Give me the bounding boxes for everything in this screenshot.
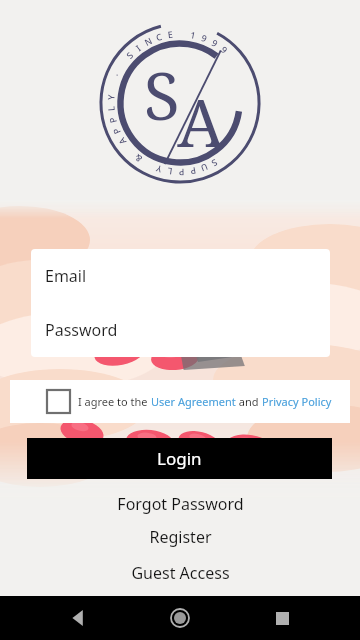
staticText: Login <box>157 447 202 470</box>
button[interactable]: Recent apps <box>258 596 306 640</box>
staticText: Forgot Password <box>117 493 244 515</box>
staticText: Password <box>45 319 118 341</box>
staticText: and <box>236 394 262 409</box>
button[interactable]: Register <box>0 524 360 550</box>
button[interactable]: Privacy Policy <box>262 394 332 409</box>
button[interactable]: I agree to the <box>10 380 350 423</box>
staticText: Email <box>45 265 87 287</box>
button[interactable]: Password <box>31 303 330 357</box>
button[interactable]: Forgot Password <box>0 491 360 517</box>
button[interactable]: Login <box>27 438 332 479</box>
staticText: Register <box>149 526 212 548</box>
button[interactable]: Guest Access <box>0 560 360 586</box>
staticText: Guest Access <box>131 562 230 584</box>
button[interactable]: User Agreement <box>151 394 236 409</box>
button[interactable]: Email <box>31 249 330 303</box>
button[interactable]: Home <box>156 596 204 640</box>
staticText: I agree to the <box>78 394 151 409</box>
button[interactable]: Back <box>54 596 102 640</box>
